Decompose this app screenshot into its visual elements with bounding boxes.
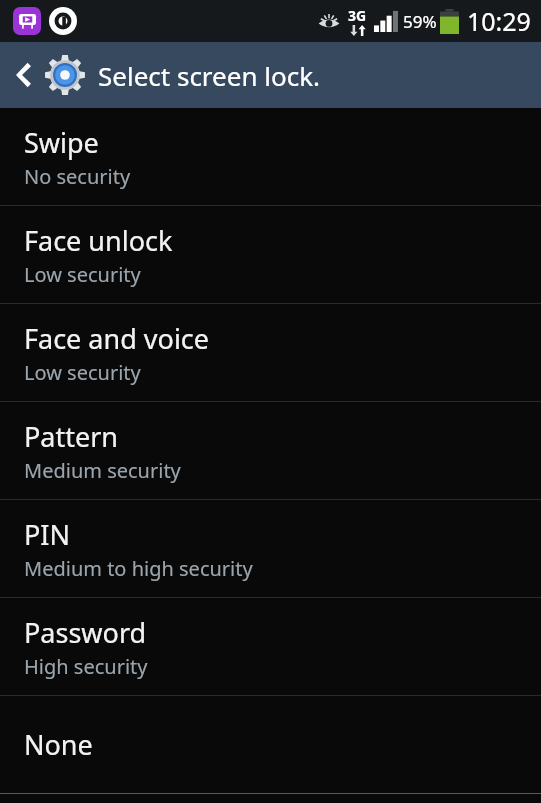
- staticText: Swipe: [24, 124, 99, 161]
- staticText: Face and voice: [24, 320, 210, 357]
- staticText: High security: [24, 653, 148, 680]
- staticText: PIN: [24, 516, 71, 553]
- staticText: 10:29: [467, 4, 531, 38]
- staticText: Low security: [24, 359, 141, 386]
- staticText: Low security: [24, 261, 141, 288]
- button[interactable]: PIN: [0, 500, 541, 597]
- staticText: None: [24, 726, 93, 763]
- button[interactable]: Password: [0, 598, 541, 695]
- staticText: Face unlock: [24, 222, 173, 259]
- button[interactable]: None: [0, 696, 541, 793]
- button[interactable]: Face and voice: [0, 304, 541, 401]
- staticText: Password: [24, 614, 147, 651]
- button[interactable]: Swipe: [0, 108, 541, 205]
- staticText: 59%: [403, 10, 437, 33]
- button[interactable]: Pattern: [0, 402, 541, 499]
- button[interactable]: Navigate up: [0, 42, 44, 108]
- staticText: Select screen lock.: [98, 58, 321, 93]
- staticText: No security: [24, 163, 131, 190]
- staticText: 3G: [348, 6, 367, 25]
- staticText: Medium to high security: [24, 555, 253, 582]
- staticText: Medium security: [24, 457, 181, 484]
- button[interactable]: Face unlock: [0, 206, 541, 303]
- staticText: Pattern: [24, 418, 119, 455]
